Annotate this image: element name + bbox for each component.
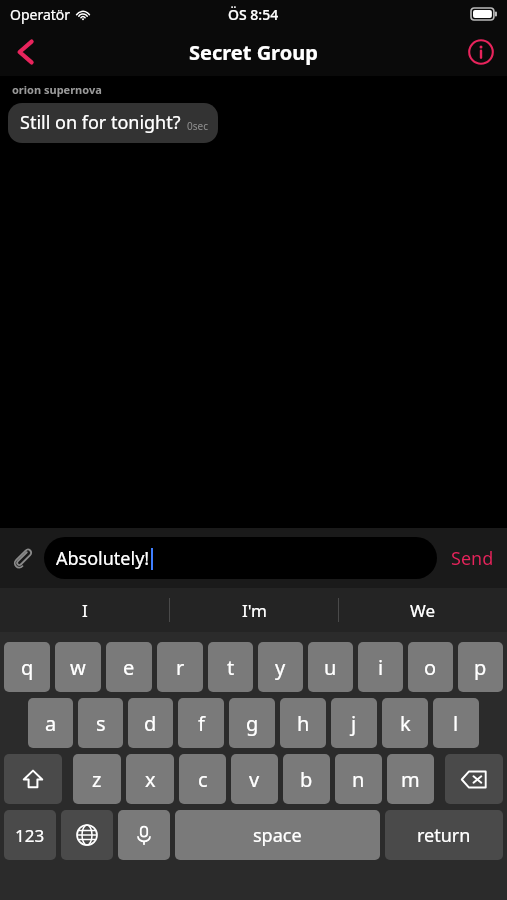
staticText: Operatör <box>10 5 71 24</box>
staticText: Secret Group <box>189 39 318 66</box>
staticText: m <box>401 766 420 793</box>
staticText: n <box>352 766 365 793</box>
button[interactable]: I <box>0 588 169 632</box>
button[interactable]: l <box>433 698 479 748</box>
staticText: d <box>144 710 157 737</box>
staticText: k <box>400 710 411 737</box>
staticText: g <box>246 710 259 737</box>
button[interactable]: Back <box>0 28 52 76</box>
button[interactable]: v <box>231 754 278 804</box>
staticText: y <box>275 654 286 681</box>
staticText: f <box>198 710 205 737</box>
staticText: a <box>45 710 57 737</box>
button[interactable]: b <box>283 754 330 804</box>
button[interactable]: f <box>178 698 224 748</box>
button[interactable]: p <box>458 642 503 692</box>
staticText: ÖS 8:54 <box>228 5 279 24</box>
staticText: o <box>424 654 437 681</box>
staticText: s <box>96 710 106 737</box>
staticText: We <box>410 599 436 622</box>
button[interactable]: s <box>78 698 123 748</box>
button[interactable]: i <box>358 642 403 692</box>
button[interactable]: Dictate <box>118 810 170 860</box>
staticText: 123 <box>15 824 45 847</box>
staticText: I'm <box>242 599 267 622</box>
button[interactable]: I'm <box>170 588 338 632</box>
staticText: u <box>324 654 337 681</box>
button[interactable]: y <box>258 642 303 692</box>
button[interactable]: d <box>128 698 173 748</box>
button[interactable]: Change keyboard <box>61 810 113 860</box>
staticText: Absolutely! <box>56 546 150 571</box>
button[interactable]: w <box>55 642 101 692</box>
staticText: I <box>82 599 88 622</box>
staticText: i <box>378 654 384 681</box>
staticText: space <box>253 823 302 848</box>
button[interactable]: We <box>339 588 507 632</box>
button[interactable]: a <box>28 698 73 748</box>
staticText: e <box>123 654 135 681</box>
staticText: p <box>474 654 487 681</box>
staticText: c <box>198 766 208 793</box>
staticText: h <box>297 710 310 737</box>
button[interactable]: q <box>4 642 50 692</box>
button[interactable]: Shift <box>4 754 62 804</box>
button[interactable]: g <box>229 698 275 748</box>
button[interactable]: Still on for tonight? <box>8 103 218 143</box>
button[interactable]: k <box>382 698 428 748</box>
button[interactable]: Absolutely! <box>44 537 437 579</box>
staticText: w <box>70 654 86 681</box>
button[interactable]: Group info <box>455 28 507 76</box>
button[interactable]: Attach <box>0 528 44 588</box>
button[interactable]: n <box>335 754 382 804</box>
staticText: v <box>249 766 260 793</box>
button[interactable]: r <box>157 642 203 692</box>
staticText: Still on for tonight? <box>20 110 181 135</box>
staticText: z <box>92 766 102 793</box>
staticText: x <box>145 766 156 793</box>
button[interactable]: x <box>126 754 174 804</box>
staticText: return <box>417 823 471 848</box>
button[interactable]: Send <box>437 528 507 588</box>
button[interactable]: 123 <box>4 810 56 860</box>
button[interactable]: j <box>331 698 377 748</box>
button[interactable]: o <box>408 642 453 692</box>
button[interactable]: u <box>308 642 353 692</box>
staticText: Send <box>451 546 494 571</box>
button[interactable]: space <box>175 810 380 860</box>
button[interactable]: Backspace <box>445 754 503 804</box>
button[interactable]: return <box>385 810 503 860</box>
staticText: r <box>176 654 185 681</box>
button[interactable]: c <box>179 754 226 804</box>
staticText: orion supernova <box>12 82 102 97</box>
button[interactable]: z <box>73 754 121 804</box>
staticText: 0sec <box>187 119 208 133</box>
button[interactable]: e <box>106 642 152 692</box>
button[interactable]: m <box>387 754 434 804</box>
staticText: j <box>351 710 357 737</box>
button[interactable]: h <box>280 698 326 748</box>
staticText: l <box>453 710 459 737</box>
staticText: q <box>21 654 34 681</box>
staticText: b <box>300 766 313 793</box>
button[interactable]: t <box>208 642 253 692</box>
staticText: t <box>227 654 235 681</box>
